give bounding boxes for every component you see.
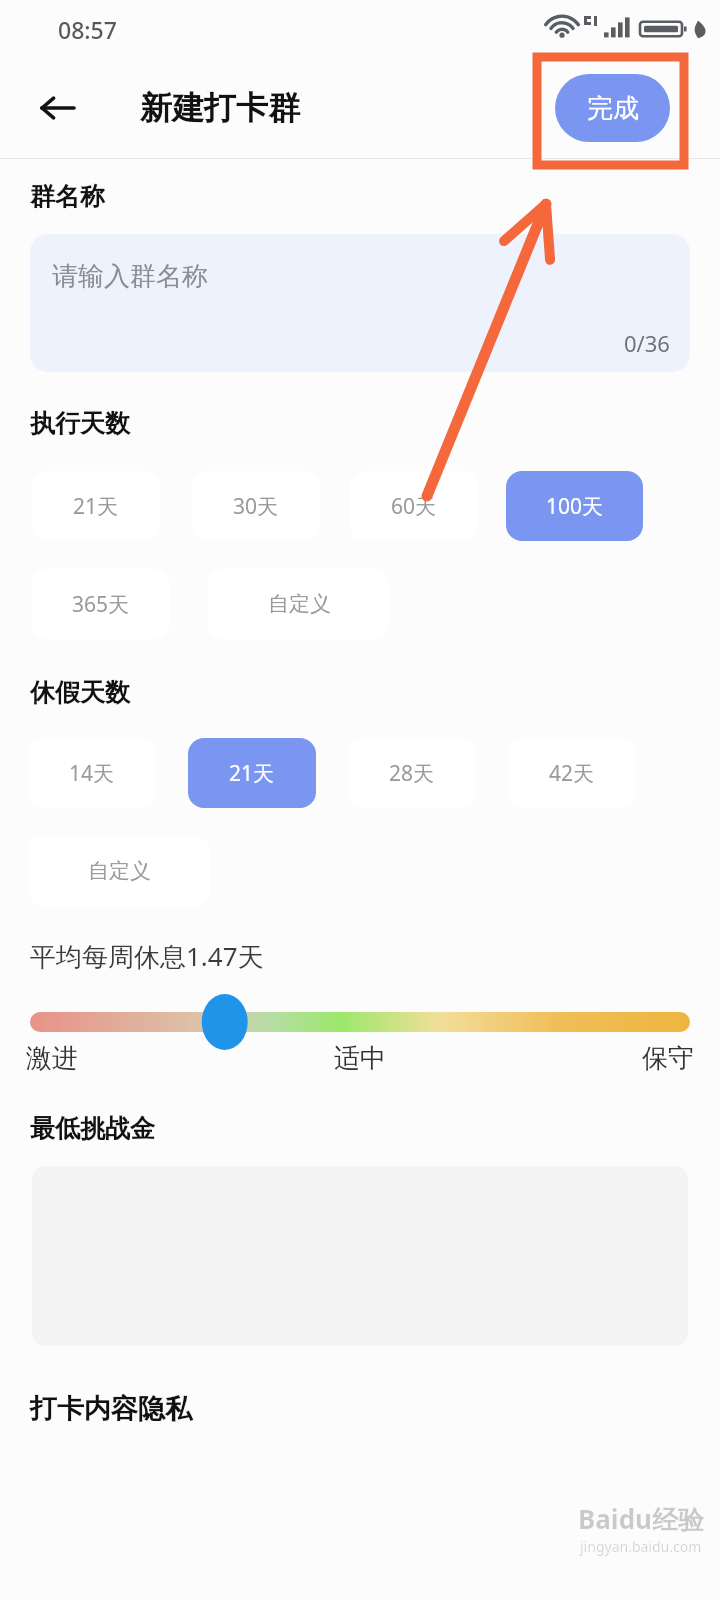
staticText: 执行天数 <box>30 408 130 439</box>
staticText: 自定义 <box>268 591 331 617</box>
staticText: 14天 <box>69 759 115 788</box>
staticText: 60天 <box>391 492 437 521</box>
staticText: 100天 <box>546 492 604 521</box>
staticText: 打卡内容隐私 <box>30 1392 192 1426</box>
staticText: 28天 <box>389 759 435 788</box>
button[interactable]: 30天 <box>192 471 320 541</box>
staticText: 请输入群名称 <box>52 260 208 293</box>
button[interactable]: 自定义 <box>28 836 210 906</box>
staticText: 08:57 <box>58 14 117 45</box>
staticText: 保守 <box>642 1042 694 1075</box>
staticText: 群名称 <box>30 181 105 212</box>
staticText: 自定义 <box>88 858 151 884</box>
staticText: 0/36 <box>624 328 670 358</box>
staticText: 完成 <box>587 92 639 125</box>
staticText: 21天 <box>73 492 119 521</box>
staticText: 平均每周休息1.47天 <box>30 938 264 974</box>
staticText: Baidu经验 <box>578 1501 704 1537</box>
staticText: 最低挑战金 <box>30 1113 155 1144</box>
button[interactable]: 28天 <box>348 738 476 808</box>
button[interactable]: 21天 <box>188 738 316 808</box>
button[interactable]: 21天 <box>32 471 160 541</box>
staticText: jingyan.baidu.com <box>580 1537 702 1556</box>
button[interactable]: 42天 <box>508 738 636 808</box>
button[interactable]: Back <box>26 77 88 139</box>
button[interactable]: 请输入群名称 <box>30 234 690 372</box>
staticText: 激进 <box>26 1042 78 1075</box>
staticText: 新建打卡群 <box>140 88 300 128</box>
button[interactable]: 14天 <box>28 738 156 808</box>
button[interactable]: 365天 <box>32 569 170 639</box>
staticText: 休假天数 <box>30 677 130 708</box>
staticText: 21天 <box>229 759 275 788</box>
button[interactable]: 自定义 <box>208 569 390 639</box>
button[interactable]: 60天 <box>350 471 478 541</box>
staticText: 30天 <box>233 492 279 521</box>
staticText: 适中 <box>78 1042 642 1075</box>
button[interactable]: 100天 <box>506 471 643 541</box>
staticText: 42天 <box>549 759 595 788</box>
staticText: 365天 <box>72 590 130 619</box>
button[interactable]: 完成 <box>555 74 670 142</box>
